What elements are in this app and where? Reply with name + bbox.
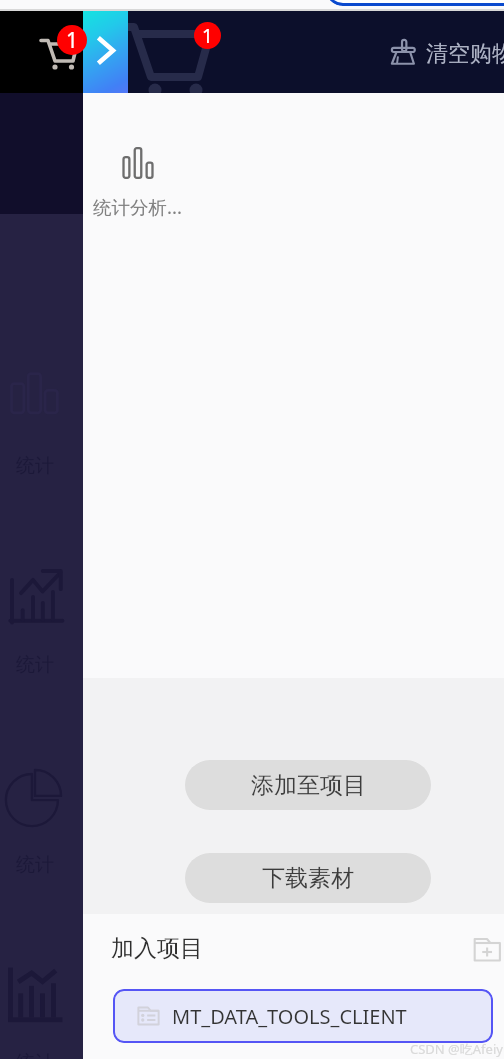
staticText: 统计: [16, 853, 54, 877]
button[interactable]: 下载素材: [185, 853, 431, 903]
button[interactable]: Next: [83, 11, 128, 93]
button[interactable]: 添加至项目: [185, 760, 431, 810]
staticText: 下载素材: [262, 864, 354, 893]
staticText: 加入项目: [111, 934, 203, 963]
staticText: MT_DATA_TOOLS_CLIENT: [172, 1003, 407, 1030]
button[interactable]: New folder: [467, 931, 503, 967]
staticText: CSDN @吃Afeiyu0: [410, 1040, 504, 1058]
staticText: 统计: [16, 653, 54, 677]
staticText: 统计分析...: [93, 194, 182, 219]
staticText: 1: [202, 23, 213, 49]
button[interactable]: Cart: [0, 11, 83, 93]
staticText: 添加至项目: [251, 771, 366, 800]
staticText: 1: [66, 26, 79, 55]
button[interactable]: 统计: [0, 943, 83, 1059]
staticText: 清空购物车: [426, 40, 504, 68]
staticText: 统计: [16, 454, 54, 478]
button[interactable]: MT_DATA_TOOLS_CLIENT: [113, 989, 493, 1043]
button[interactable]: 清空购物车: [388, 35, 504, 81]
